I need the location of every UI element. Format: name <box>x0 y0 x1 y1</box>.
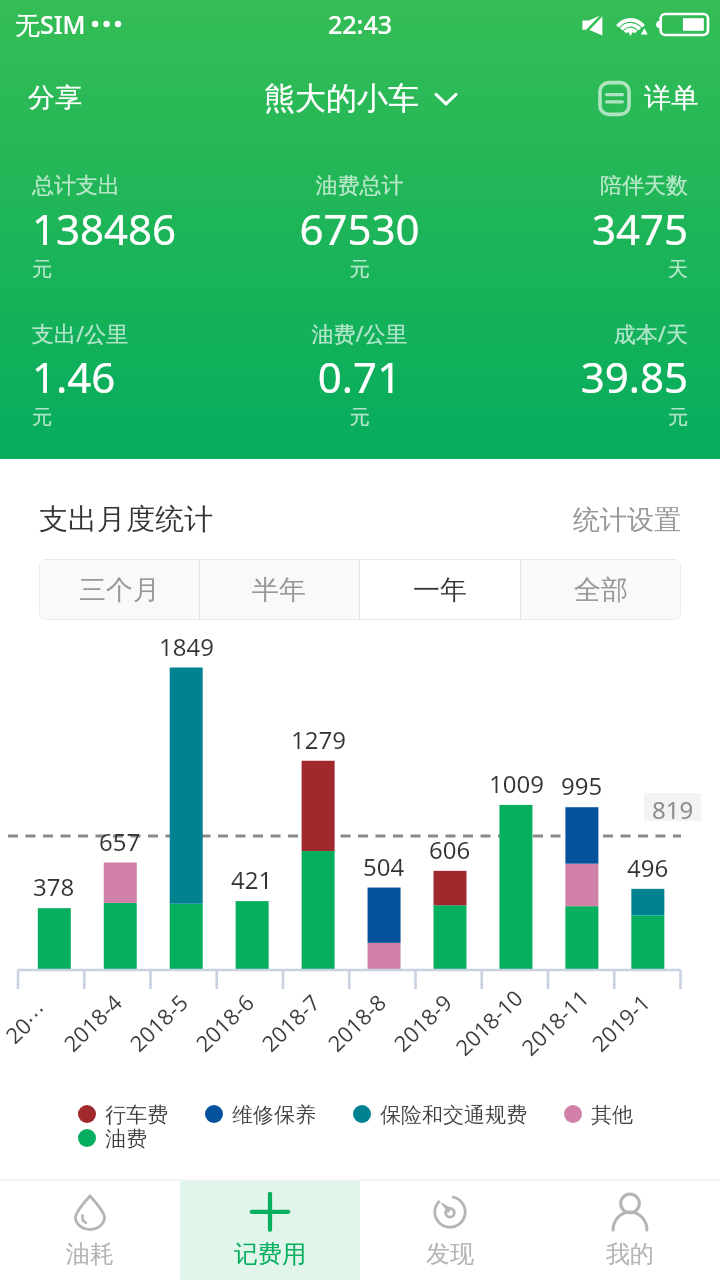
staticText: 138486 <box>32 200 250 257</box>
staticText: 记费用 <box>234 1239 306 1269</box>
staticText: 606 <box>429 833 471 866</box>
staticText: 全部 <box>574 573 628 607</box>
staticText: 2018-11 <box>514 982 595 1062</box>
staticText: 油费 <box>105 1126 147 1150</box>
staticText: 分享 <box>28 81 82 115</box>
staticText: 2018-9 <box>386 986 458 1057</box>
staticText: 详单 <box>644 81 698 115</box>
staticText: 保险和交通规费 <box>380 1102 527 1126</box>
staticText: 39.85 <box>469 348 688 405</box>
staticText: 995 <box>561 769 603 802</box>
staticText: 元 <box>469 405 688 430</box>
staticText: 天 <box>469 257 688 282</box>
button[interactable]: 油耗 <box>0 1181 180 1280</box>
staticText: 行车费 <box>105 1102 168 1126</box>
staticText: 油费总计 <box>250 172 469 200</box>
staticText: 0.71 <box>250 348 469 405</box>
staticText: 1.46 <box>32 348 250 405</box>
staticText: 维修保养 <box>232 1102 316 1126</box>
staticText: 发现 <box>426 1239 474 1269</box>
button[interactable]: 维修保养 <box>205 1102 316 1126</box>
staticText: 2018-10 <box>448 982 529 1062</box>
other: Silent mode <box>582 14 603 36</box>
button[interactable]: 分享 <box>0 73 110 123</box>
staticText: 1009 <box>489 767 544 800</box>
staticText: 其他 <box>591 1102 633 1126</box>
button[interactable]: 其他 <box>564 1102 633 1126</box>
other: Wi-Fi <box>615 13 648 36</box>
button[interactable]: 熊大的小车 <box>256 71 464 126</box>
staticText: 支出月度统计 <box>39 501 213 538</box>
staticText: 三个月 <box>79 573 160 607</box>
button[interactable]: 行车费 <box>78 1102 168 1126</box>
staticText: 22:43 <box>328 7 393 41</box>
staticText: 元 <box>32 405 250 430</box>
staticText: 元 <box>32 257 250 282</box>
button[interactable]: 记费用 <box>180 1181 360 1280</box>
staticText: 陪伴天数 <box>469 172 688 200</box>
button[interactable]: 统计设置 <box>573 503 681 537</box>
staticText: 20⋯ <box>0 994 54 1049</box>
button[interactable]: 详单 <box>586 75 720 121</box>
button[interactable]: 油费 <box>78 1126 147 1150</box>
staticText: 2018-4 <box>56 986 128 1057</box>
staticText: 2018-7 <box>254 986 326 1057</box>
staticText: 总计支出 <box>32 172 250 200</box>
staticText: 421 <box>231 863 273 896</box>
staticText: 3475 <box>469 200 688 257</box>
staticText: 熊大的小车 <box>264 79 419 118</box>
staticText: 统计设置 <box>573 503 681 537</box>
staticText: 504 <box>363 850 405 883</box>
button[interactable]: 发现 <box>360 1181 540 1280</box>
staticText: 2018-5 <box>122 986 194 1057</box>
button[interactable]: 一年 <box>359 559 520 620</box>
staticText: 2019-1 <box>584 986 656 1057</box>
staticText: 油费/公里 <box>250 318 469 348</box>
staticText: 496 <box>627 851 669 884</box>
staticText: 1279 <box>291 723 346 756</box>
staticText: 我的 <box>606 1239 654 1269</box>
button[interactable]: 三个月 <box>39 559 199 620</box>
button[interactable]: 半年 <box>199 559 359 620</box>
staticText: 67530 <box>250 200 469 257</box>
staticText: 2018-6 <box>188 986 260 1057</box>
staticText: 819 <box>652 793 694 821</box>
staticText: 一年 <box>413 573 467 607</box>
staticText: 元 <box>250 405 469 430</box>
staticText: 成本/天 <box>469 318 688 348</box>
staticText: 657 <box>99 825 141 858</box>
staticText: 油耗 <box>66 1239 114 1269</box>
button[interactable]: 全部 <box>520 559 681 620</box>
other: Battery <box>656 14 708 35</box>
staticText: 378 <box>33 870 75 903</box>
staticText: 无SIM <box>15 7 86 41</box>
staticText: 支出/公里 <box>32 318 250 348</box>
button[interactable]: 我的 <box>540 1181 720 1280</box>
staticText: 半年 <box>252 573 306 607</box>
staticText: 2018-8 <box>320 986 392 1057</box>
button[interactable]: 保险和交通规费 <box>353 1102 527 1126</box>
staticText: 元 <box>250 257 469 282</box>
staticText: 1849 <box>159 630 214 663</box>
